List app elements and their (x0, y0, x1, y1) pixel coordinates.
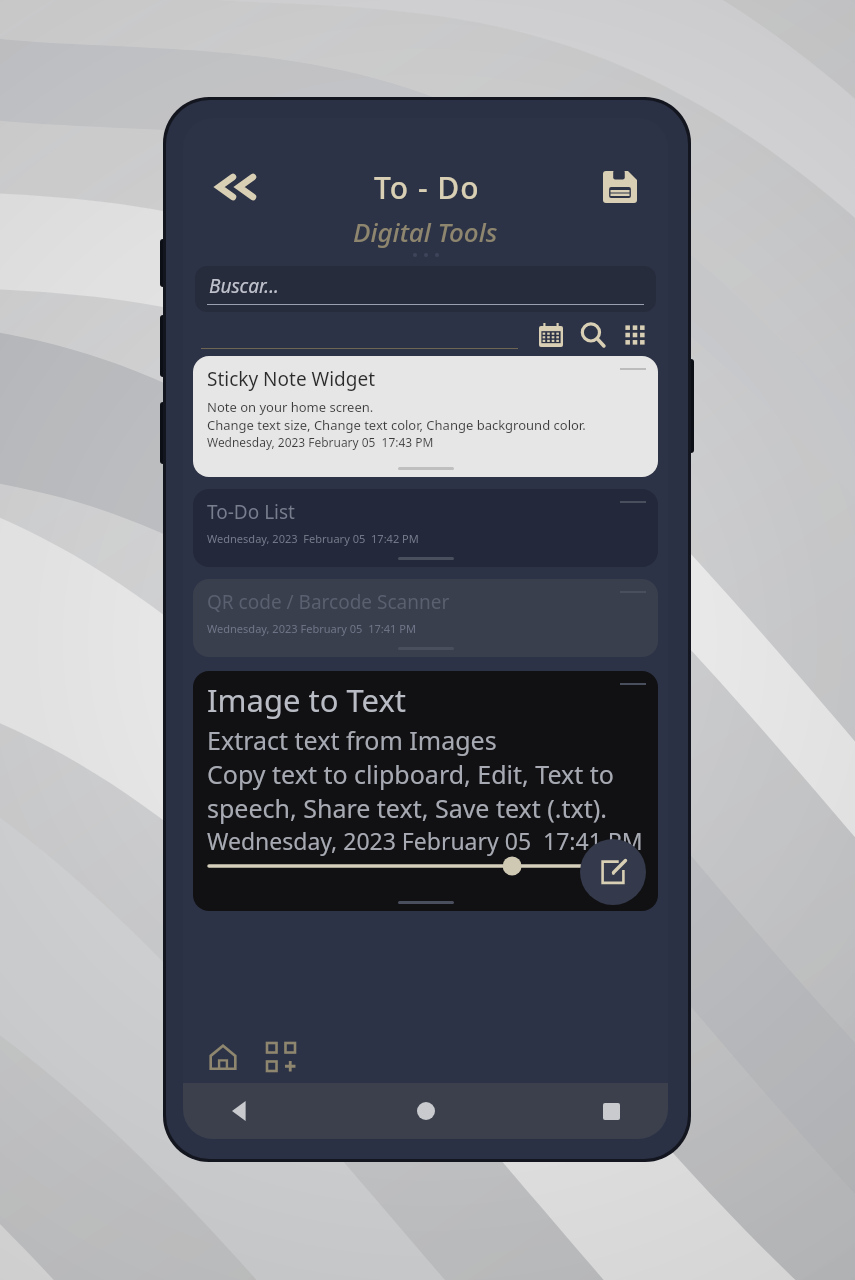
button[interactable]: Edit (580, 839, 646, 905)
staticText: To - Do (374, 167, 480, 208)
staticText: Wednesday, 2023 February 05 17:43 PM (207, 434, 434, 450)
staticText: Wednesday, 2023 February 05 17:42 PM (207, 531, 419, 546)
staticText: QR code / Barcode Scanner (207, 589, 450, 615)
staticText: Copy text to clipboard, Edit, Text to (207, 757, 614, 791)
staticText: Extract text from Images (207, 723, 497, 757)
button[interactable]: Grid view (614, 314, 656, 356)
button[interactable]: Recents (588, 1088, 634, 1134)
staticText: speech, Share text, Save text (.txt). (207, 791, 608, 825)
button[interactable]: Save (594, 164, 646, 210)
button[interactable]: Calendar (530, 314, 572, 356)
staticText: Wednesday, 2023 February 05 17:41 PM (207, 825, 643, 856)
staticText: Note on your home screen. (207, 398, 374, 416)
staticText: Digital Tools (353, 214, 498, 249)
staticText: Wednesday, 2023 February 05 17:41 PM (207, 621, 416, 636)
staticText: Buscar... (209, 273, 279, 299)
button[interactable]: Sticky Note Widget (193, 356, 658, 477)
staticText: To-Do List (207, 499, 295, 525)
button[interactable]: Home (403, 1088, 449, 1134)
button[interactable]: Back (217, 1088, 263, 1134)
button[interactable]: To-Do List (193, 489, 658, 567)
button[interactable]: Back (203, 165, 259, 209)
button[interactable]: Buscar... (195, 266, 656, 312)
button[interactable]: Search (572, 314, 614, 356)
button[interactable]: QR code / Barcode Scanner (193, 579, 658, 657)
button[interactable]: Home (199, 1033, 247, 1081)
button[interactable]: Add widget (257, 1033, 305, 1081)
button[interactable]: Image to Text (193, 671, 658, 911)
staticText: Change text size, Change text color, Cha… (207, 416, 586, 434)
staticText: Sticky Note Widget (207, 366, 376, 392)
staticText: Image to Text (207, 679, 407, 721)
